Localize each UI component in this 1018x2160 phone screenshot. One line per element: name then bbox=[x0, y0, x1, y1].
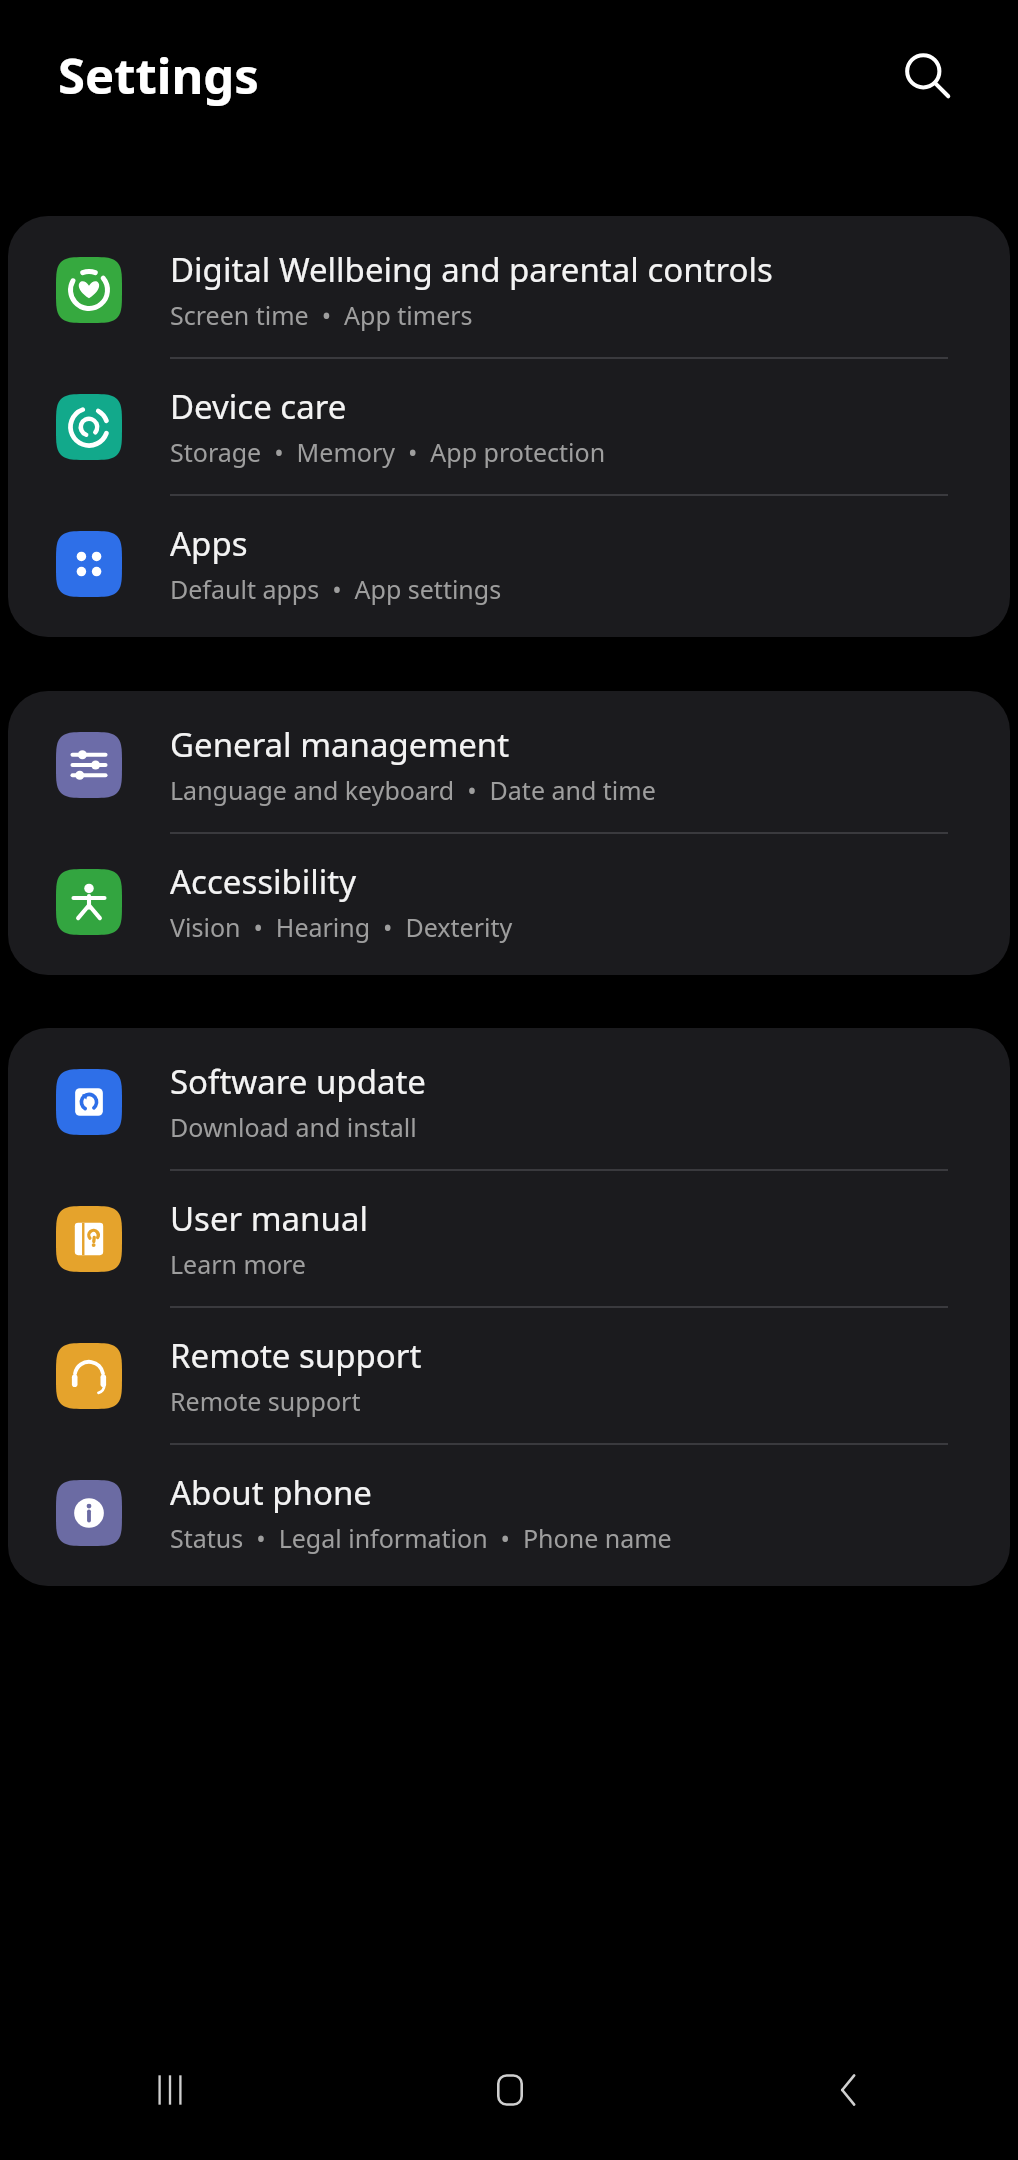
staticText: About phone bbox=[170, 1470, 372, 1515]
staticText: Apps bbox=[170, 521, 248, 566]
staticText: Learn more bbox=[170, 1247, 306, 1281]
staticText: General management bbox=[170, 722, 510, 767]
staticText: Download and install bbox=[170, 1110, 417, 1144]
button[interactable]: Recent apps bbox=[0, 2020, 340, 2160]
staticText: Vision • Hearing • Dexterity bbox=[170, 910, 513, 944]
staticText: Storage • Memory • App protection bbox=[170, 435, 606, 469]
staticText: Screen time • App timers bbox=[170, 298, 473, 332]
button[interactable]: Apps bbox=[8, 496, 1010, 631]
button[interactable]: Digital Wellbeing and parental controls bbox=[8, 222, 1010, 359]
staticText: Digital Wellbeing and parental controls bbox=[170, 247, 773, 292]
staticText: Software update bbox=[170, 1059, 426, 1104]
staticText: Accessibility bbox=[170, 859, 357, 904]
staticText: User manual bbox=[170, 1196, 368, 1241]
button[interactable]: Back bbox=[679, 2020, 1018, 2160]
staticText: Default apps • App settings bbox=[170, 572, 502, 606]
button[interactable]: Search bbox=[884, 32, 970, 118]
staticText: Language and keyboard • Date and time bbox=[170, 773, 656, 807]
button[interactable]: Device care bbox=[8, 359, 1010, 496]
button[interactable]: Home bbox=[340, 2020, 679, 2160]
staticText: Remote support bbox=[170, 1333, 422, 1378]
button[interactable]: General management bbox=[8, 697, 1010, 834]
button[interactable]: Software update bbox=[8, 1034, 1010, 1171]
staticText: Settings bbox=[58, 42, 259, 109]
button[interactable]: Remote support bbox=[8, 1308, 1010, 1445]
staticText: Device care bbox=[170, 384, 347, 429]
button[interactable]: User manual bbox=[8, 1171, 1010, 1308]
button[interactable]: Accessibility bbox=[8, 834, 1010, 969]
staticText: Status • Legal information • Phone name bbox=[170, 1521, 672, 1555]
staticText: Remote support bbox=[170, 1384, 361, 1418]
button[interactable]: About phone bbox=[8, 1445, 1010, 1580]
